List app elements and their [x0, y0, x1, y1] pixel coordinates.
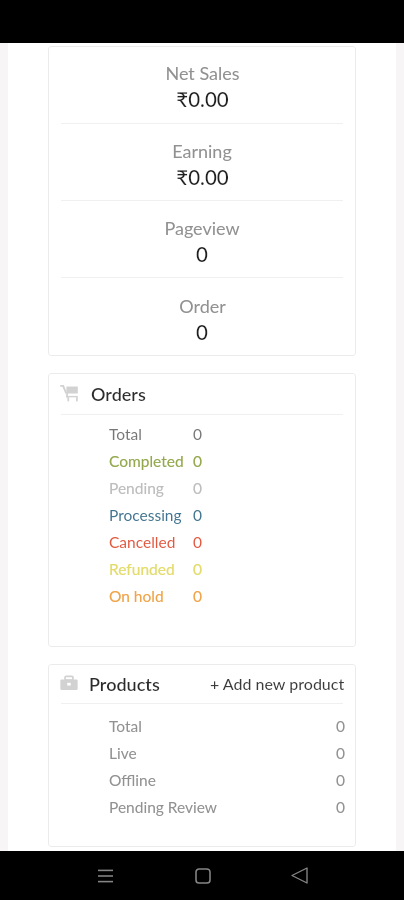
button[interactable]: Total	[109, 713, 345, 740]
staticText: Pending Review	[109, 798, 218, 817]
staticText: Earning	[172, 140, 232, 162]
staticText: Order	[179, 295, 226, 317]
button[interactable]: Completed	[48, 448, 356, 475]
staticText: 0	[336, 717, 345, 736]
button[interactable]: Pending	[48, 475, 356, 502]
staticText: 0	[336, 771, 345, 790]
staticText: Live	[109, 744, 137, 763]
staticText: 0	[196, 242, 208, 267]
staticText: 0	[193, 479, 202, 498]
button[interactable]: Back	[251, 851, 348, 900]
staticText: Orders	[91, 383, 146, 405]
button[interactable]: Home	[154, 851, 251, 900]
button[interactable]: Processing	[48, 502, 356, 529]
button[interactable]: Total	[48, 421, 356, 448]
staticText: 0	[193, 425, 202, 444]
staticText: 0	[336, 798, 345, 817]
button[interactable]: + Add new product	[210, 674, 345, 693]
button[interactable]: Order	[48, 278, 356, 356]
staticText: ₹0.00	[176, 165, 229, 190]
staticText: 0	[196, 320, 208, 345]
button[interactable]: Refunded	[48, 556, 356, 583]
staticText: 0	[193, 533, 202, 552]
button[interactable]: Cancelled	[48, 529, 356, 556]
staticText: 0	[336, 744, 345, 763]
staticText: Refunded	[109, 560, 175, 579]
staticText: ₹0.00	[176, 87, 229, 112]
staticText: 0	[193, 560, 202, 579]
staticText: Pageview	[164, 217, 240, 239]
staticText: Pending	[109, 479, 164, 498]
staticText: + Add new product	[210, 674, 345, 693]
staticText: 0	[193, 506, 202, 525]
button[interactable]: Earning	[48, 124, 356, 200]
button[interactable]: Offline	[109, 767, 345, 794]
button[interactable]: Recent apps	[56, 851, 154, 900]
staticText: 0	[193, 452, 202, 471]
staticText: Cancelled	[109, 533, 176, 552]
button[interactable]: On hold	[48, 583, 356, 610]
staticText: Offline	[109, 771, 156, 790]
button[interactable]: Net Sales	[48, 46, 356, 123]
staticText: On hold	[109, 587, 164, 606]
staticText: Processing	[109, 506, 182, 525]
staticText: Products	[89, 673, 160, 695]
staticText: Completed	[109, 452, 184, 471]
staticText: Total	[109, 717, 142, 736]
button[interactable]: Live	[109, 740, 345, 767]
staticText: Net Sales	[165, 62, 240, 84]
staticText: Total	[109, 425, 142, 444]
button[interactable]: Pageview	[48, 201, 356, 277]
staticText: 0	[193, 587, 202, 606]
button[interactable]: Pending Review	[109, 794, 345, 821]
